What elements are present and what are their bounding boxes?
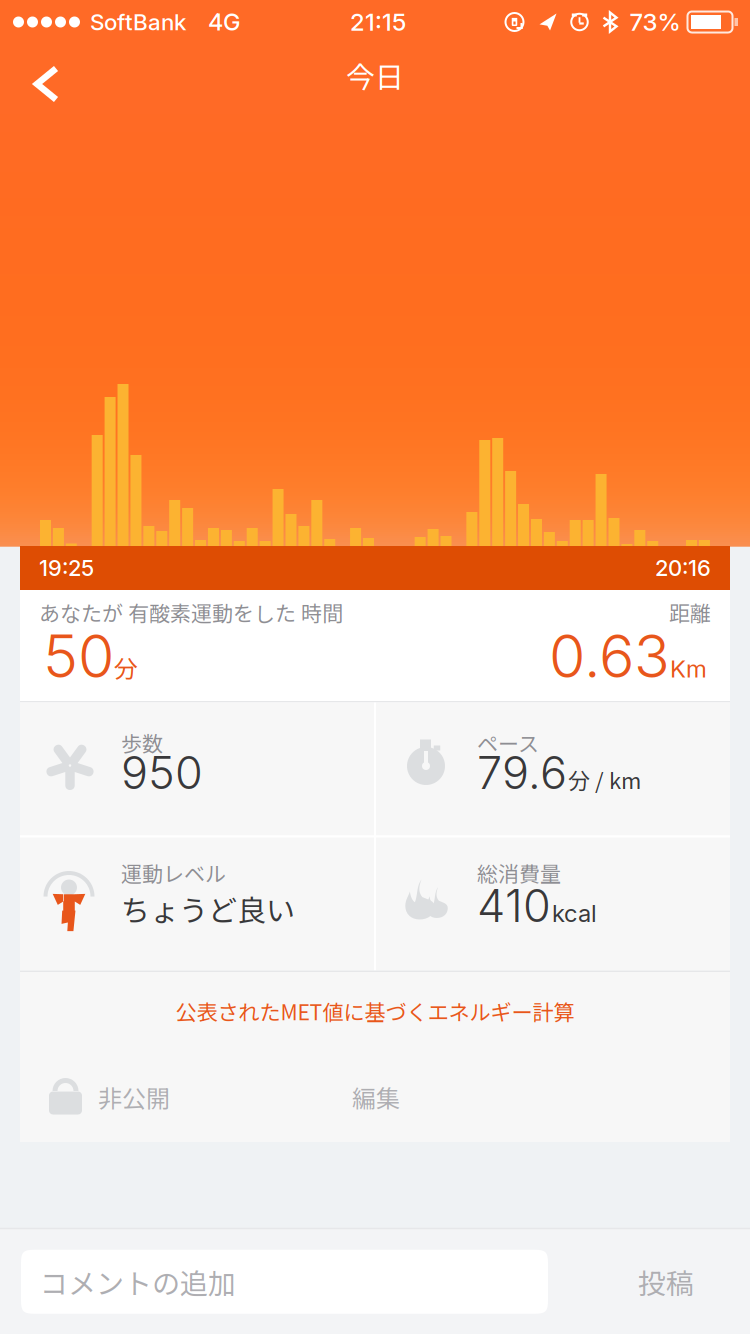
staticText: 410 bbox=[477, 878, 551, 933]
staticText: 総消費量 bbox=[477, 857, 561, 888]
staticText: ちょうど良い bbox=[121, 887, 295, 929]
staticText: 950 bbox=[121, 745, 203, 800]
staticText: 今日 bbox=[346, 54, 404, 96]
button[interactable]: コメントの追加 bbox=[21, 1250, 548, 1314]
staticText: 非公開 bbox=[98, 1080, 170, 1114]
staticText: コメントの追加 bbox=[40, 1261, 236, 1302]
button[interactable]: 公表されたMET値に基づくエネルギー計算 bbox=[20, 981, 730, 1041]
staticText: 50 bbox=[43, 620, 114, 692]
staticText: 距離 bbox=[669, 597, 711, 627]
staticText: 21:15 bbox=[350, 7, 406, 36]
staticText: 19:25 bbox=[39, 555, 94, 581]
staticText: 投稿 bbox=[638, 1261, 694, 1302]
staticText: 運動レベル bbox=[121, 857, 226, 888]
staticText: kcal bbox=[552, 899, 597, 928]
staticText: Km bbox=[670, 654, 707, 683]
staticText: ペース bbox=[477, 727, 539, 758]
staticText: 20:16 bbox=[655, 555, 711, 581]
button[interactable]: 投稿 bbox=[610, 1243, 722, 1320]
staticText: 73% bbox=[629, 7, 680, 36]
staticText: 公表されたMET値に基づくエネルギー計算 bbox=[175, 996, 574, 1026]
staticText: 4G bbox=[208, 8, 241, 36]
staticText: 編集 bbox=[352, 1080, 400, 1114]
button[interactable]: 編集 bbox=[316, 1067, 436, 1127]
button[interactable]: 非公開 bbox=[20, 1067, 230, 1127]
staticText: あなたが 有酸素運動をした 時間 bbox=[39, 597, 343, 627]
staticText: 79.6 bbox=[477, 745, 567, 800]
button[interactable]: Back bbox=[0, 45, 90, 108]
staticText: SoftBank bbox=[90, 8, 186, 36]
staticText: 歩数 bbox=[121, 727, 163, 758]
staticText: 分 bbox=[114, 650, 138, 684]
staticText: 分 / km bbox=[568, 764, 641, 795]
staticText: 0.63 bbox=[549, 620, 670, 692]
